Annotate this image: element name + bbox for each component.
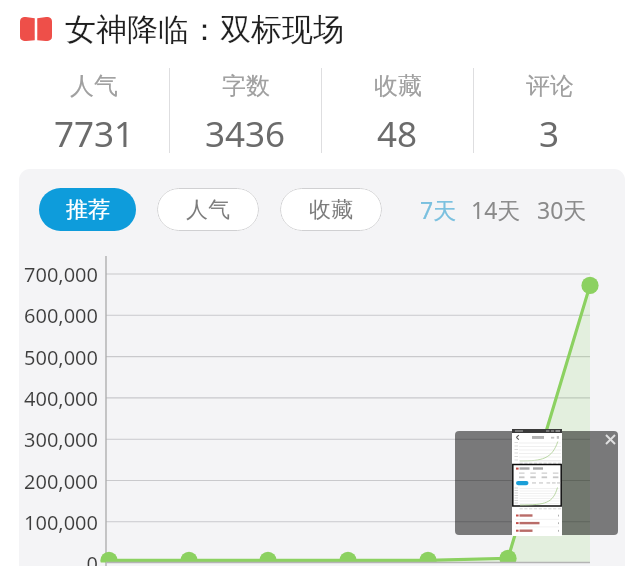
staticText: 3	[539, 110, 560, 158]
button[interactable]: 30天	[537, 194, 587, 225]
staticText: 400,000	[19, 385, 98, 412]
staticText: 200,000	[19, 468, 98, 495]
button[interactable]	[512, 429, 562, 536]
staticText: 推荐	[66, 196, 110, 224]
staticText: 收藏	[309, 196, 353, 224]
staticText: 700,000	[19, 261, 98, 288]
staticText: 7天	[420, 194, 457, 225]
staticText: 300,000	[19, 426, 98, 453]
staticText: 女神降临：双标现场	[65, 10, 344, 49]
staticText: 48	[377, 110, 418, 158]
staticText: 人气	[186, 196, 230, 224]
staticText: 30天	[537, 194, 587, 225]
button[interactable]: 人气	[157, 188, 259, 231]
staticText: 14天	[471, 194, 521, 225]
button[interactable]: 收藏	[280, 188, 382, 231]
staticText: 评论	[526, 71, 574, 101]
staticText: 100,000	[19, 509, 98, 536]
staticText: 500,000	[19, 344, 98, 371]
staticText: 7731	[54, 110, 135, 158]
button[interactable]: 7天	[420, 194, 457, 225]
staticText: 收藏	[374, 71, 422, 101]
button[interactable]: 字数	[170, 66, 321, 155]
button[interactable]: 人气	[19, 66, 169, 155]
staticText: 字数	[222, 71, 270, 101]
button[interactable]: 14天	[471, 194, 521, 225]
staticText: 3436	[205, 110, 286, 158]
button[interactable]: 评论	[474, 66, 625, 155]
staticText: 人气	[70, 71, 118, 101]
button[interactable]: 收藏	[322, 66, 473, 155]
staticText: 0	[19, 550, 98, 566]
button[interactable]: Close	[599, 431, 618, 450]
staticText: 600,000	[19, 302, 98, 329]
button[interactable]: 推荐	[39, 188, 136, 231]
